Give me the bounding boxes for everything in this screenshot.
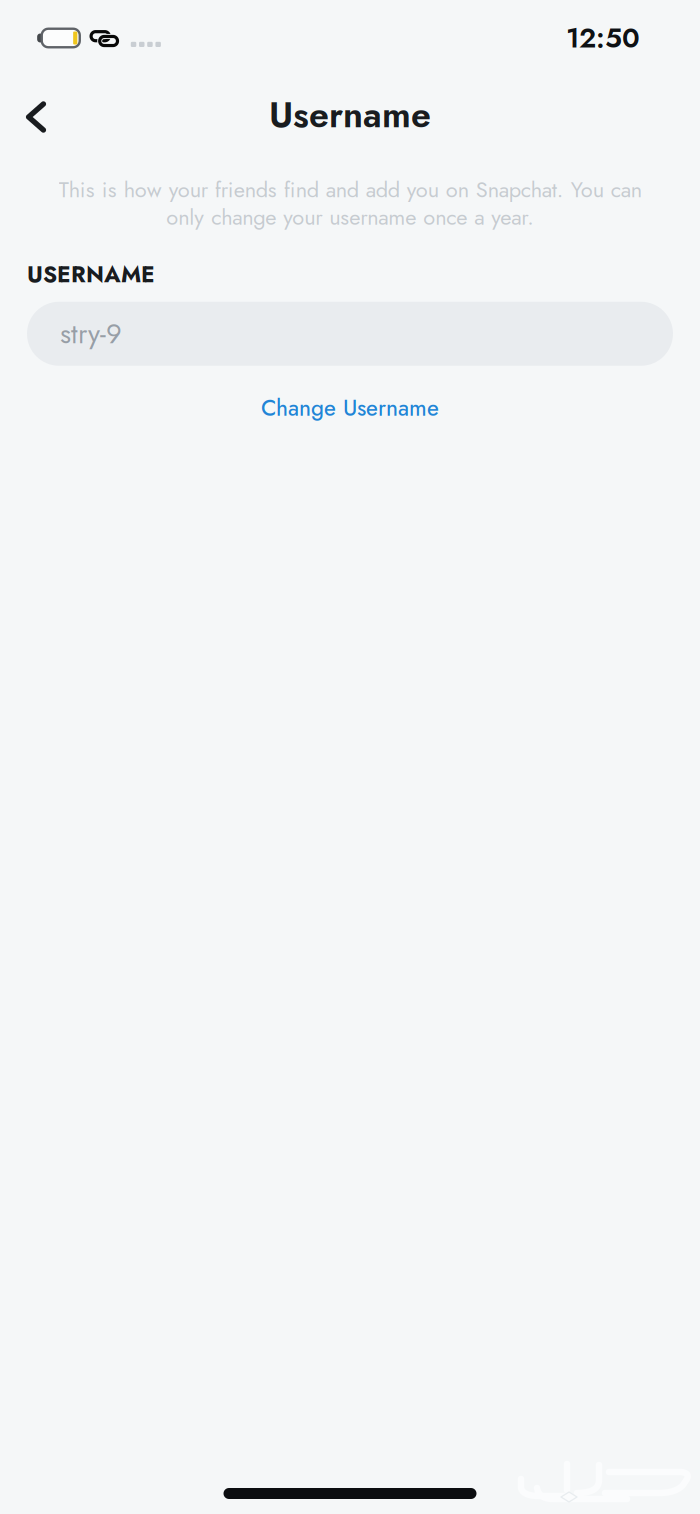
staticText: USERNAME xyxy=(27,258,155,291)
staticText: This is how your friends find and add yo… xyxy=(58,174,641,233)
staticText: 12:50 xyxy=(566,18,640,58)
staticText: stry-9 xyxy=(60,314,122,353)
staticText: Username xyxy=(269,89,431,141)
button[interactable]: Change Username xyxy=(243,382,457,434)
button[interactable]: stry-9 xyxy=(0,302,700,366)
button[interactable]: Back xyxy=(7,86,65,144)
staticText: Change Username xyxy=(261,392,439,424)
